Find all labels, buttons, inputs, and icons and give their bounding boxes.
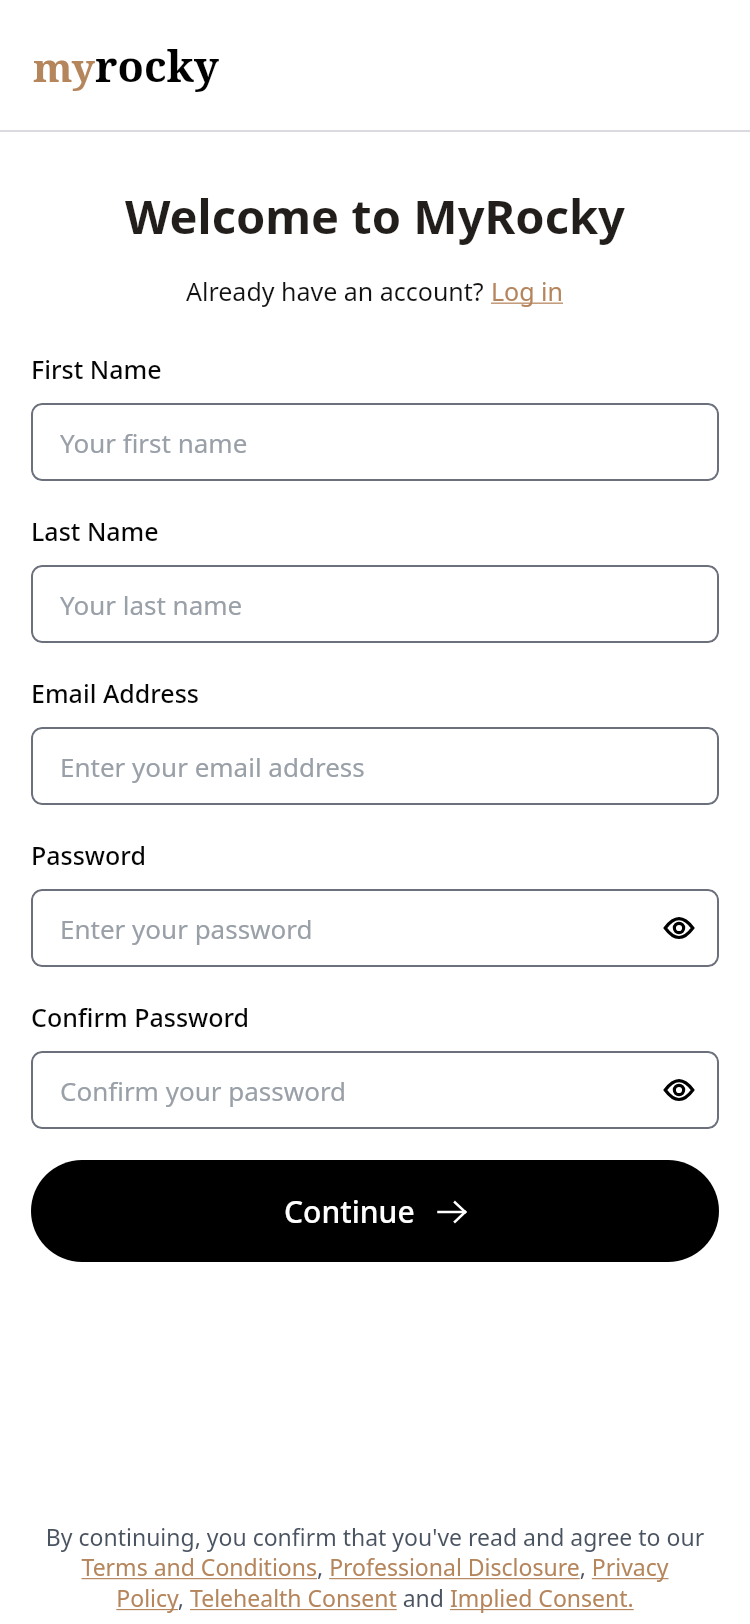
button[interactable]: Enter your password xyxy=(31,889,719,967)
button[interactable]: By continuing, you confirm that you've r… xyxy=(45,1521,705,1614)
button[interactable]: Log in xyxy=(491,274,564,308)
staticText: Last Name xyxy=(31,514,159,548)
button[interactable]: Show password xyxy=(657,906,701,950)
staticText: Enter your password xyxy=(60,911,313,946)
staticText: Continue xyxy=(284,1191,415,1232)
staticText: Email Address xyxy=(31,676,200,710)
staticText: Log in xyxy=(491,274,564,308)
staticText: Welcome to MyRocky xyxy=(31,184,719,248)
staticText: rocky xyxy=(95,36,219,95)
staticText: Password xyxy=(31,838,146,872)
button[interactable]: Enter your email address xyxy=(31,727,719,805)
staticText: my xyxy=(33,39,95,93)
staticText: Enter your email address xyxy=(60,749,365,784)
staticText: Your first name xyxy=(60,425,248,460)
staticText: Your last name xyxy=(60,587,243,622)
button[interactable]: Confirm your password xyxy=(31,1051,719,1129)
staticText: Confirm your password xyxy=(60,1073,347,1108)
staticText: First Name xyxy=(31,352,162,386)
button[interactable]: Your last name xyxy=(31,565,719,643)
staticText: Already have an account? xyxy=(186,274,491,308)
button[interactable]: Show password xyxy=(657,1068,701,1112)
button[interactable]: Your first name xyxy=(31,403,719,481)
staticText: Confirm Password xyxy=(31,1000,250,1034)
button[interactable]: Continue xyxy=(31,1160,719,1262)
